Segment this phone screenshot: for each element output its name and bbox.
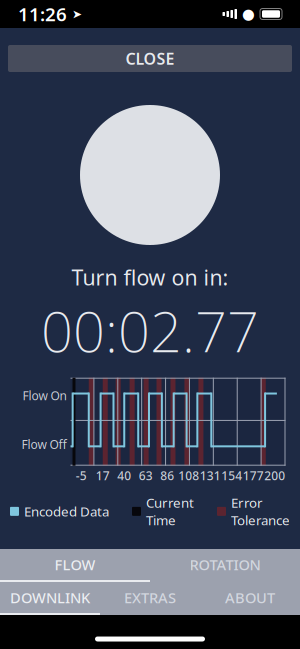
staticText: 177 (243, 468, 264, 484)
staticText: EXTRAS (124, 588, 176, 607)
staticText: Flow Off (21, 436, 66, 452)
button[interactable]: ROTATION (150, 549, 300, 580)
staticText: 63 (139, 468, 153, 484)
button[interactable]: EXTRAS (100, 582, 200, 613)
staticText: 108 (178, 468, 199, 484)
staticText: Encoded Data (24, 502, 109, 520)
staticText: DOWNLINK (10, 588, 90, 607)
staticText: ROTATION (189, 555, 260, 574)
staticText: ● (242, 6, 255, 22)
staticText: Error Tolerance (231, 494, 290, 529)
staticText: 17 (96, 468, 110, 484)
staticText: -5 (76, 468, 87, 484)
staticText: ABOUT (225, 588, 275, 607)
button[interactable]: CLOSE (8, 45, 292, 72)
staticText: 00:02.77 (41, 293, 259, 368)
button[interactable]: FLOW (0, 549, 150, 580)
staticText: 200 (264, 468, 285, 484)
staticText: 131 (200, 468, 221, 484)
button[interactable]: ABOUT (200, 582, 300, 613)
staticText: Current Time (146, 494, 194, 529)
staticText: 11:26 (18, 2, 72, 26)
staticText: Turn flow on in: (71, 263, 228, 291)
staticText: 154 (221, 468, 242, 484)
staticText: ➤ (72, 7, 82, 21)
staticText: Flow On (22, 387, 66, 403)
staticText: 40 (117, 468, 131, 484)
button[interactable]: DOWNLINK (0, 582, 100, 613)
staticText: 86 (160, 468, 174, 484)
staticText: FLOW (54, 555, 95, 574)
staticText: CLOSE (125, 48, 174, 69)
